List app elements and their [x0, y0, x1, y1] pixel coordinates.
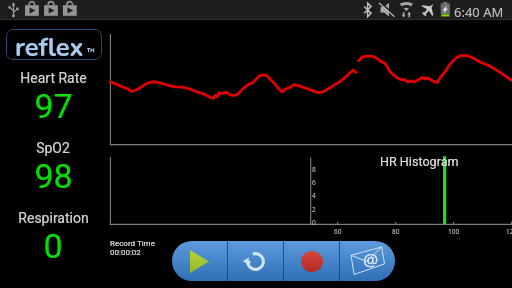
button[interactable]: Email [340, 241, 395, 281]
staticText: 00:00:02 [110, 248, 141, 257]
staticText: @ [363, 248, 379, 271]
staticText: HR Histogram [380, 154, 459, 169]
staticText: 2 [312, 205, 316, 214]
staticText: 6 [312, 178, 316, 187]
button[interactable]: Play [172, 241, 227, 281]
button[interactable]: Reset [228, 241, 283, 281]
staticText: 4 [312, 191, 316, 200]
staticText: 0 [312, 218, 316, 227]
staticText: 8 [312, 165, 316, 174]
staticText: Heart Rate [20, 70, 87, 86]
staticText: 60 [334, 227, 342, 236]
button[interactable]: Record [284, 241, 339, 281]
staticText: 80 [392, 227, 400, 236]
staticText: 97 [34, 86, 73, 126]
staticText: SpO2 [36, 140, 70, 156]
staticText: 98 [34, 156, 73, 196]
button[interactable]: reflex [6, 29, 102, 60]
staticText: Record Time [110, 239, 155, 248]
staticText: 6:40 AM [454, 3, 504, 21]
staticText: Respiration [18, 210, 89, 226]
staticText: 0 [43, 226, 63, 266]
staticText: reflex [15, 30, 84, 60]
staticText: 120 [506, 227, 512, 236]
staticText: 100 [448, 227, 460, 236]
